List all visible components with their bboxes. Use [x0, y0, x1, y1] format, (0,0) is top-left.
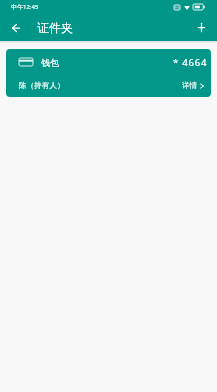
staticText: 陈（持有人）	[19, 81, 65, 91]
staticText: 中午12:45	[11, 3, 39, 11]
button[interactable]: Back	[5, 17, 26, 38]
button[interactable]: Add	[191, 17, 212, 38]
staticText: * 4664	[173, 56, 208, 69]
button[interactable]: 钱包	[6, 49, 211, 97]
button[interactable]: 详情	[182, 81, 204, 91]
staticText: 钱包	[41, 57, 59, 68]
staticText: 详情	[182, 81, 198, 91]
staticText: 证件夹	[37, 20, 73, 35]
